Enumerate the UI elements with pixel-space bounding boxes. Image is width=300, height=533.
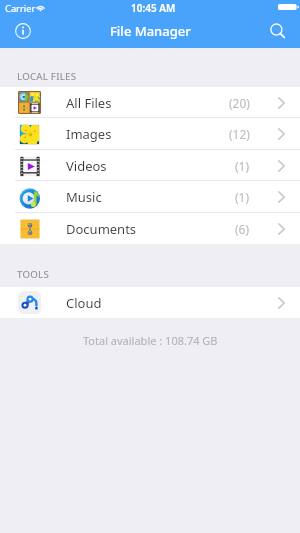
staticText: Documents — [66, 220, 137, 238]
staticText: All Files — [66, 94, 112, 112]
button[interactable]: Documents — [0, 213, 300, 244]
button[interactable]: All Files — [0, 87, 300, 118]
button[interactable]: Music — [0, 181, 300, 213]
staticText: Total available : 108.74 GB — [83, 333, 218, 348]
button[interactable]: Images — [0, 118, 300, 150]
staticText: (20) — [229, 95, 250, 111]
staticText: Cloud — [66, 294, 102, 312]
button[interactable]: Cloud — [0, 287, 300, 318]
staticText: (12) — [229, 126, 250, 142]
staticText: Images — [66, 125, 112, 143]
staticText: Music — [66, 188, 102, 206]
button[interactable]: Search — [267, 21, 289, 43]
staticText: (1) — [235, 189, 250, 205]
staticText: LOCAL FILES — [17, 70, 77, 83]
staticText: Videos — [66, 157, 107, 175]
staticText: 10:45 AM — [131, 1, 176, 15]
staticText: (6) — [235, 221, 250, 237]
button[interactable]: Info — [12, 20, 34, 42]
staticText: Carrier — [5, 2, 36, 15]
staticText: File Manager — [110, 22, 191, 40]
staticText: TOOLS — [17, 268, 49, 281]
button[interactable]: Videos — [0, 150, 300, 181]
staticText: (1) — [235, 158, 250, 174]
